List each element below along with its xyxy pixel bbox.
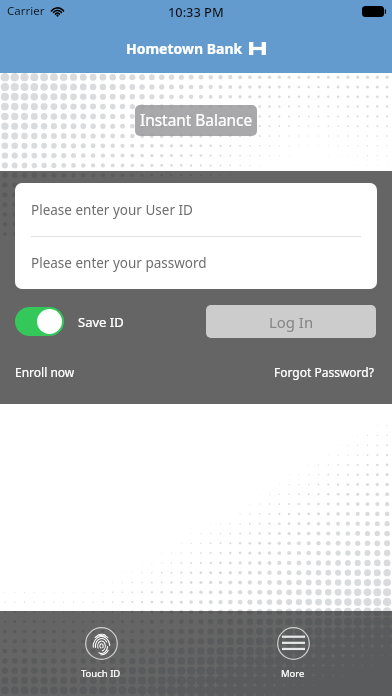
staticText: 10:33 PM <box>168 3 224 20</box>
button[interactable]: Save ID <box>15 307 124 336</box>
button[interactable]: Forgot Password? <box>274 364 374 380</box>
staticText: Log In <box>269 312 314 332</box>
button[interactable]: More <box>262 627 324 680</box>
staticText: Carrier <box>7 3 45 19</box>
button[interactable]: Please enter your User ID <box>15 183 377 236</box>
button[interactable]: Enroll now <box>15 364 75 380</box>
button[interactable]: Log In <box>206 305 376 338</box>
staticText: Touch ID <box>81 667 121 680</box>
staticText: Save ID <box>78 313 124 331</box>
staticText: Instant Balance <box>140 110 253 131</box>
staticText: Hometown Bank <box>126 39 243 58</box>
staticText: Please enter your password <box>31 254 207 272</box>
button[interactable]: Instant Balance <box>135 105 257 136</box>
staticText: More <box>281 667 305 680</box>
button[interactable]: Touch ID <box>70 627 132 680</box>
staticText: Please enter your User ID <box>31 201 193 219</box>
button[interactable]: Please enter your password <box>15 237 377 289</box>
